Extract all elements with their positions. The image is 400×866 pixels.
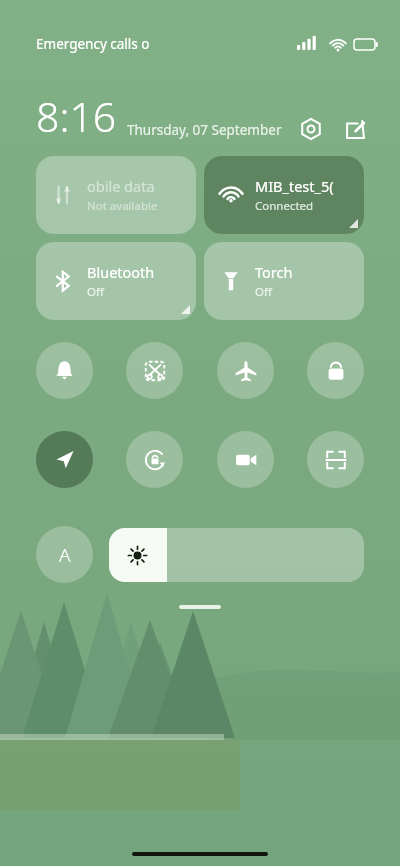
button[interactable]: Lock screen: [307, 342, 364, 399]
staticText: Thursday, 07 September: [127, 121, 282, 139]
staticText: Torch: [255, 262, 293, 282]
button[interactable]: Auto brightness: [36, 526, 93, 583]
staticText: Off: [87, 284, 104, 300]
button[interactable]: Wi-Fi: [204, 156, 364, 234]
staticText: Connected: [255, 198, 314, 214]
button[interactable]: Settings: [296, 114, 326, 144]
button[interactable]: Edit: [340, 114, 370, 144]
button[interactable]: Auto rotate: [126, 431, 183, 488]
staticText: Bluetooth: [87, 262, 155, 282]
button[interactable]: Mobile data: [36, 156, 196, 234]
staticText: Off: [255, 284, 272, 300]
button[interactable]: Torch: [204, 242, 364, 320]
button[interactable]: Screen recorder: [217, 431, 274, 488]
staticText: Not available: [87, 198, 158, 214]
button[interactable]: Bluetooth: [36, 242, 196, 320]
staticText: A: [59, 542, 71, 568]
button[interactable]: Airplane mode: [217, 342, 274, 399]
staticText: 8:16: [36, 88, 117, 144]
staticText: obile data: [87, 176, 155, 196]
button[interactable]: Brightness: [109, 528, 364, 582]
button[interactable]: Screenshot: [126, 342, 183, 399]
button[interactable]: Scan code: [307, 431, 364, 488]
button[interactable]: Silent mode: [36, 342, 93, 399]
staticText: MIB_test_5(: [255, 176, 334, 196]
button[interactable]: Location: [36, 431, 93, 488]
staticText: Emergency calls o: [36, 35, 150, 53]
